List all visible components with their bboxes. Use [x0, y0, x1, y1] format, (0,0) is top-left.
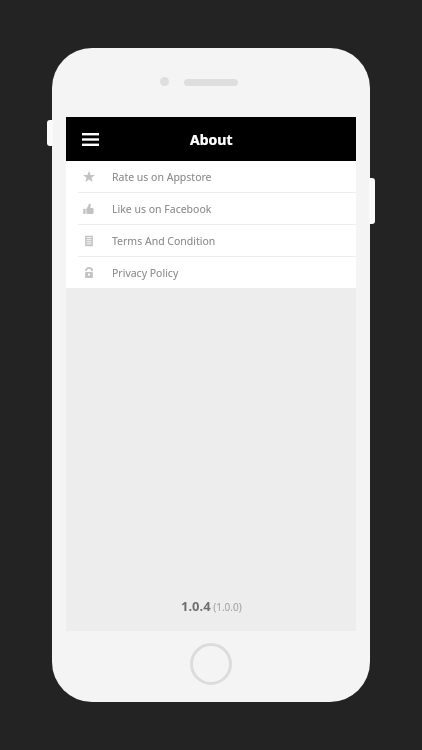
staticText: 1.0.4 (1.0.0) [181, 597, 242, 615]
staticText: Rate us on Appstore [112, 170, 212, 184]
button[interactable]: Home [190, 643, 232, 685]
button[interactable]: Terms And Condition [66, 225, 356, 256]
button[interactable]: Open navigation menu [66, 117, 114, 161]
button[interactable]: Like us on Facebook [66, 193, 356, 224]
staticText: Privacy Policy [112, 266, 179, 280]
staticText: Like us on Facebook [112, 202, 212, 216]
staticText: Terms And Condition [112, 234, 216, 248]
staticText: About [190, 130, 233, 149]
button[interactable]: Rate us on Appstore [66, 161, 356, 192]
button[interactable]: Privacy Policy [66, 257, 356, 288]
